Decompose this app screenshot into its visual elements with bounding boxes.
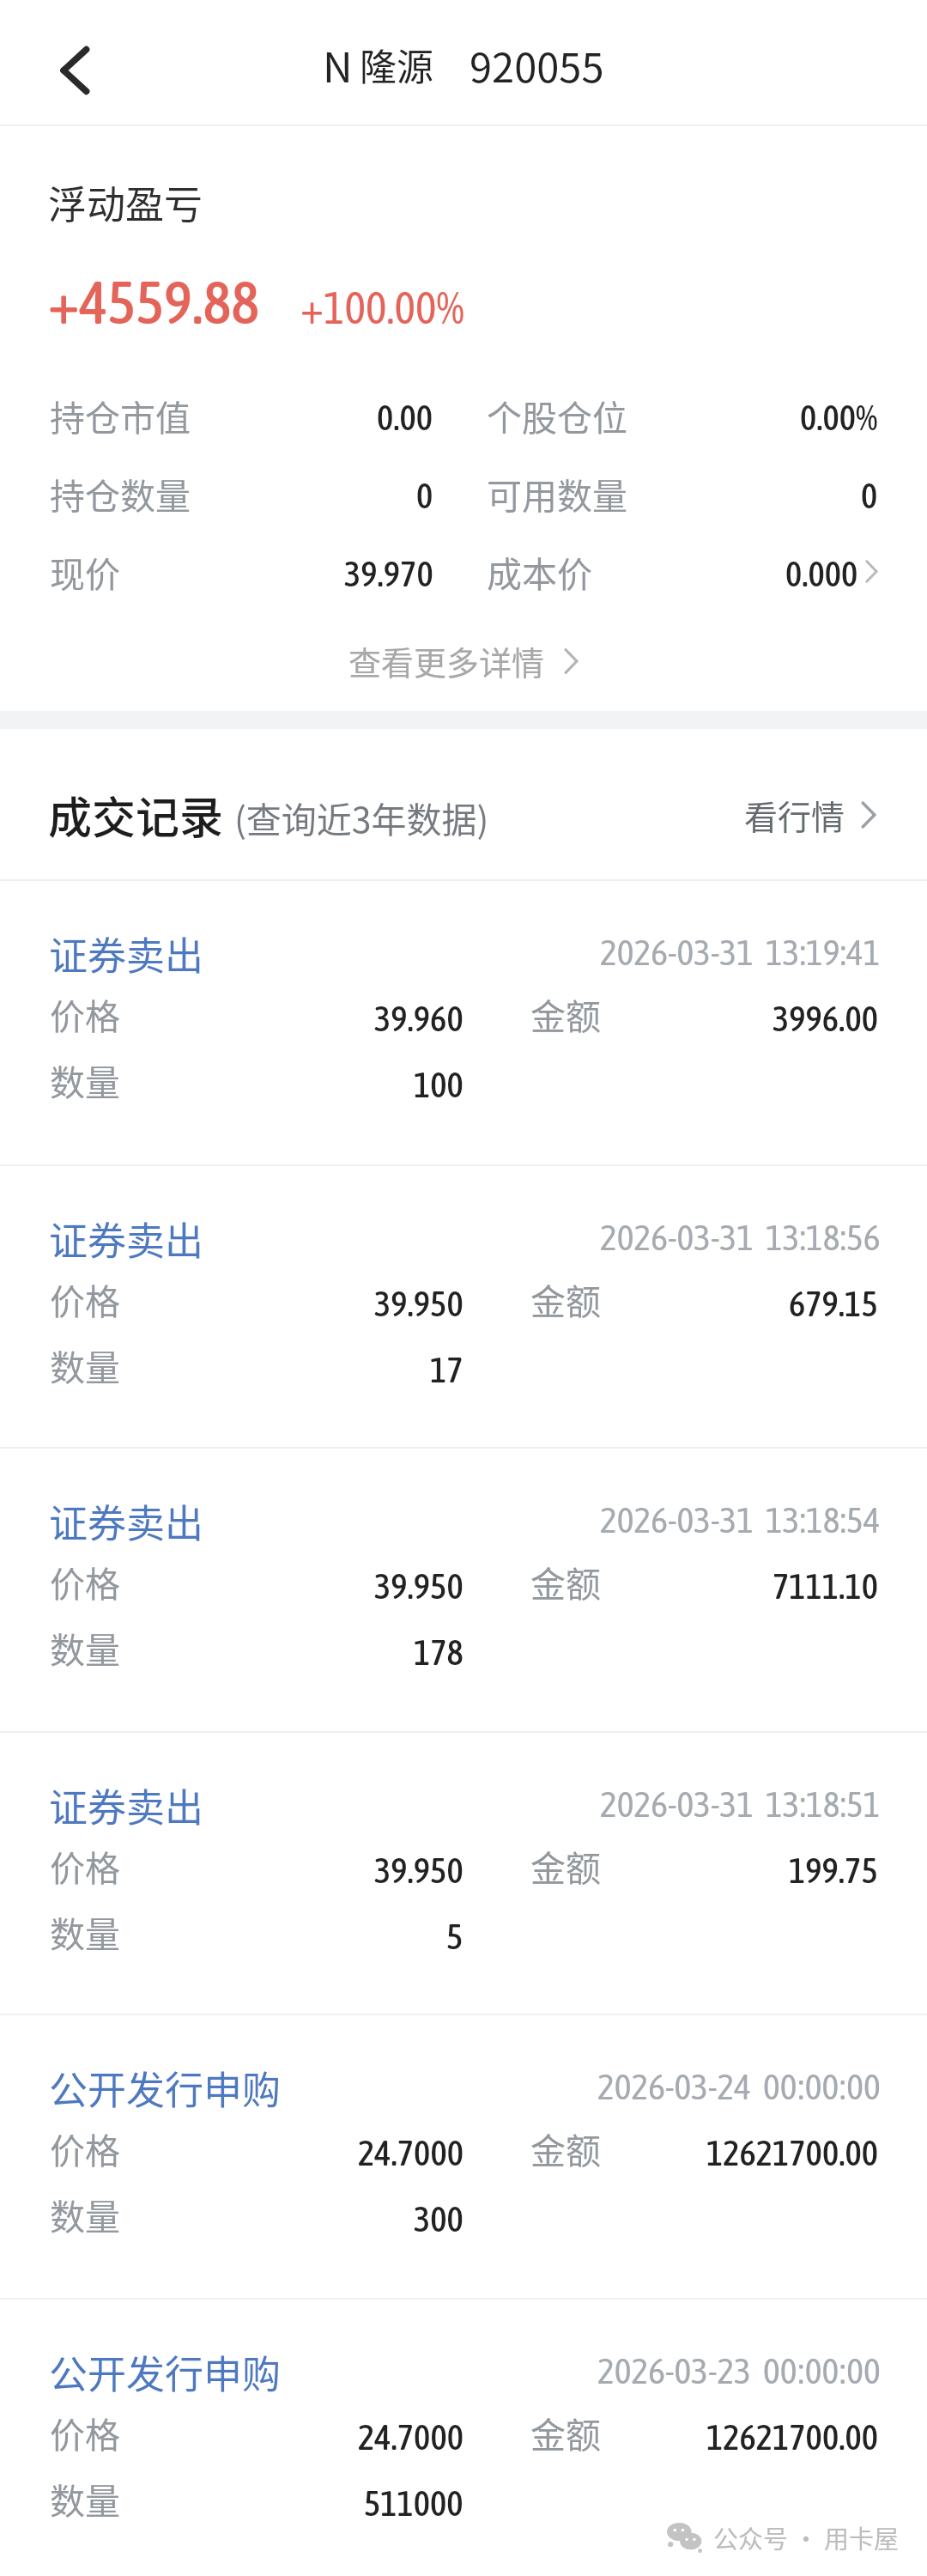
- staticText: 2026-03-31 13:18:56: [600, 1217, 881, 1258]
- staticText: 金额: [530, 988, 601, 1039]
- staticText: 金额: [530, 1556, 601, 1607]
- staticText: 证券卖出: [49, 1211, 204, 1267]
- staticText: 证券卖出: [49, 1493, 204, 1549]
- staticText: 679.15: [789, 1284, 878, 1324]
- staticText: +100.00%: [300, 282, 464, 333]
- staticText: 39.950: [374, 1566, 463, 1607]
- staticText: 2026-03-24 00:00:00: [597, 2066, 881, 2107]
- staticText: 价格: [50, 2123, 120, 2173]
- staticText: 数量: [50, 2189, 120, 2239]
- staticText: 2026-03-31 13:18:51: [600, 1783, 881, 1825]
- staticText: 公开发行申购: [49, 2344, 282, 2400]
- staticText: 3996.00: [772, 999, 878, 1039]
- staticText: 价格: [50, 1273, 120, 1324]
- staticText: 2026-03-23 00:00:00: [597, 2350, 881, 2391]
- staticText: 金额: [530, 1840, 601, 1891]
- staticText: 511000: [364, 2483, 463, 2524]
- staticText: 12621700.00: [706, 2417, 878, 2458]
- staticText: 2026-03-31 13:18:54: [600, 1499, 881, 1540]
- staticText: 数量: [50, 1054, 120, 1105]
- staticText: 看行情: [744, 791, 845, 839]
- staticText: 公开发行申购: [49, 2060, 282, 2116]
- staticText: 成本价: [487, 546, 592, 597]
- staticText: 39.970: [344, 554, 433, 594]
- staticText: 证券卖出: [49, 926, 204, 981]
- staticText: 现价: [50, 546, 120, 597]
- button[interactable]: 看行情: [744, 791, 876, 839]
- staticText: 0: [861, 476, 878, 516]
- staticText: 公众号 · 用卡屋: [713, 2519, 899, 2555]
- staticText: 920055: [470, 35, 604, 94]
- staticText: 100: [414, 1065, 463, 1105]
- staticText: 39.950: [374, 1850, 463, 1891]
- staticText: 0: [416, 476, 433, 516]
- staticText: +4559.88: [48, 268, 260, 337]
- staticText: 数量: [50, 2473, 120, 2524]
- staticText: 金额: [530, 2407, 601, 2458]
- staticText: 数量: [50, 1622, 120, 1673]
- staticText: 24.7000: [358, 2133, 463, 2173]
- staticText: 隆源: [360, 38, 433, 91]
- button[interactable]: 公开发行申购: [0, 2015, 927, 2300]
- staticText: 数量: [50, 1906, 120, 1957]
- staticText: 个股仓位: [487, 390, 627, 440]
- button[interactable]: 证券卖出: [0, 1733, 927, 2015]
- staticText: 24.7000: [358, 2417, 463, 2458]
- staticText: (查询近3年数据): [234, 792, 489, 842]
- staticText: 持仓数量: [50, 468, 191, 519]
- staticText: 199.75: [789, 1850, 878, 1891]
- staticText: 300: [414, 2199, 463, 2239]
- staticText: 证券卖出: [49, 1777, 204, 1833]
- staticText: 12621700.00: [706, 2133, 878, 2173]
- staticText: 17: [430, 1350, 463, 1390]
- button[interactable]: 证券卖出: [0, 881, 927, 1166]
- staticText: 可用数量: [487, 468, 627, 519]
- staticText: 39.950: [374, 1284, 463, 1324]
- staticText: 持仓市值: [50, 390, 191, 440]
- staticText: 查看更多详情: [348, 637, 545, 684]
- staticText: 价格: [50, 1840, 120, 1891]
- button[interactable]: Back: [32, 27, 118, 113]
- button[interactable]: 公开发行申购: [0, 2300, 927, 2576]
- staticText: 0.00%: [800, 398, 878, 438]
- staticText: 成交记录: [48, 783, 224, 847]
- staticText: 金额: [530, 1273, 601, 1324]
- button[interactable]: 查看更多详情: [348, 637, 579, 684]
- button[interactable]: 证券卖出: [0, 1449, 927, 1733]
- staticText: 金额: [530, 2123, 601, 2173]
- staticText: 2026-03-31 13:19:41: [600, 932, 881, 973]
- staticText: 39.960: [374, 999, 463, 1039]
- staticText: 0.000: [785, 554, 858, 594]
- button[interactable]: 证券卖出: [0, 1166, 927, 1449]
- staticText: 价格: [50, 2407, 120, 2458]
- staticText: 浮动盈亏: [48, 174, 203, 230]
- staticText: 0.00: [377, 398, 433, 438]
- staticText: 数量: [50, 1340, 120, 1390]
- staticText: 178: [414, 1632, 463, 1673]
- staticText: 价格: [50, 988, 120, 1039]
- staticText: N: [323, 34, 353, 94]
- staticText: 7111.10: [772, 1566, 878, 1607]
- staticText: 5: [446, 1917, 463, 1957]
- staticText: 价格: [50, 1556, 120, 1607]
